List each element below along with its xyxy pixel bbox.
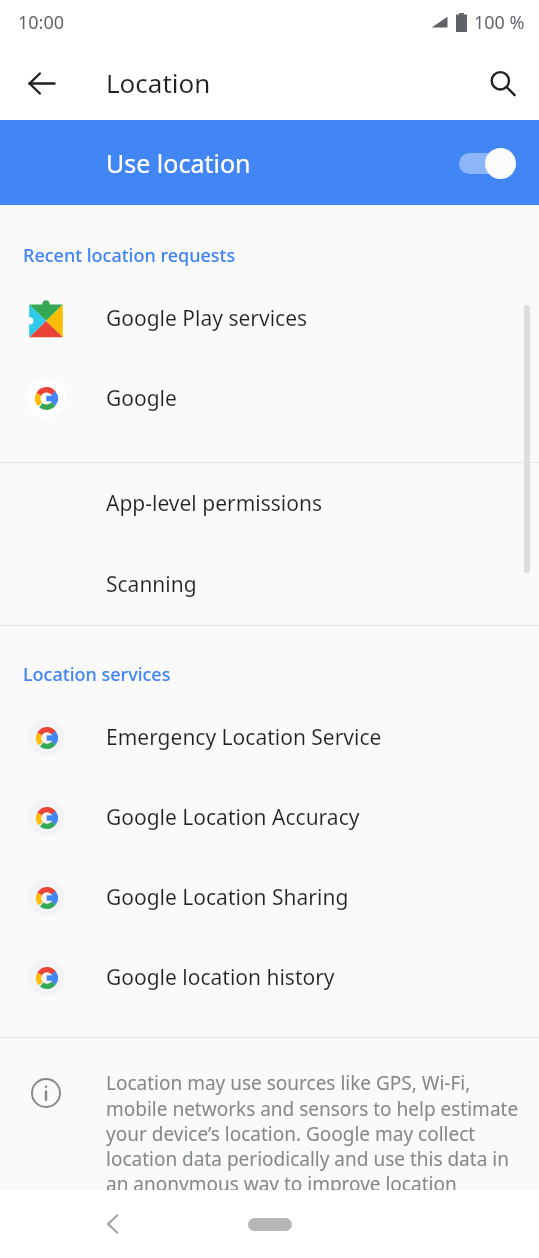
staticText: Use location bbox=[106, 146, 251, 180]
staticText: Google Play services bbox=[106, 304, 308, 333]
button[interactable]: Scanning bbox=[0, 544, 539, 625]
staticText: Google Location Accuracy bbox=[106, 803, 360, 832]
staticText: Emergency Location Service bbox=[106, 723, 382, 752]
staticText: Location bbox=[106, 65, 211, 100]
staticText: 100 % bbox=[474, 10, 525, 35]
button[interactable]: Google location history bbox=[0, 937, 539, 1017]
staticText: Recent location requests bbox=[23, 243, 236, 268]
button[interactable]: Back bbox=[88, 1199, 138, 1249]
staticText: App-level permissions bbox=[106, 489, 323, 518]
button[interactable]: Google Location Accuracy bbox=[0, 777, 539, 857]
staticText: Scanning bbox=[106, 570, 197, 599]
button[interactable]: Back bbox=[12, 54, 70, 112]
button[interactable]: App-level permissions bbox=[0, 463, 539, 544]
button[interactable]: Google Play services bbox=[0, 278, 539, 358]
staticText: Google bbox=[106, 384, 177, 413]
button[interactable]: Use location bbox=[0, 120, 539, 205]
staticText: Google location history bbox=[106, 963, 335, 992]
button[interactable]: Home bbox=[248, 1218, 292, 1231]
button[interactable]: Emergency Location Service bbox=[0, 697, 539, 777]
button[interactable]: Google bbox=[0, 358, 539, 438]
staticText: Google Location Sharing bbox=[106, 883, 349, 912]
button[interactable]: Search bbox=[473, 54, 531, 112]
staticText: 10:00 bbox=[18, 10, 65, 35]
staticText: Location may use sources like GPS, Wi-Fi… bbox=[106, 1070, 519, 1221]
staticText: Location services bbox=[23, 662, 171, 687]
button[interactable]: Google Location Sharing bbox=[0, 857, 539, 937]
